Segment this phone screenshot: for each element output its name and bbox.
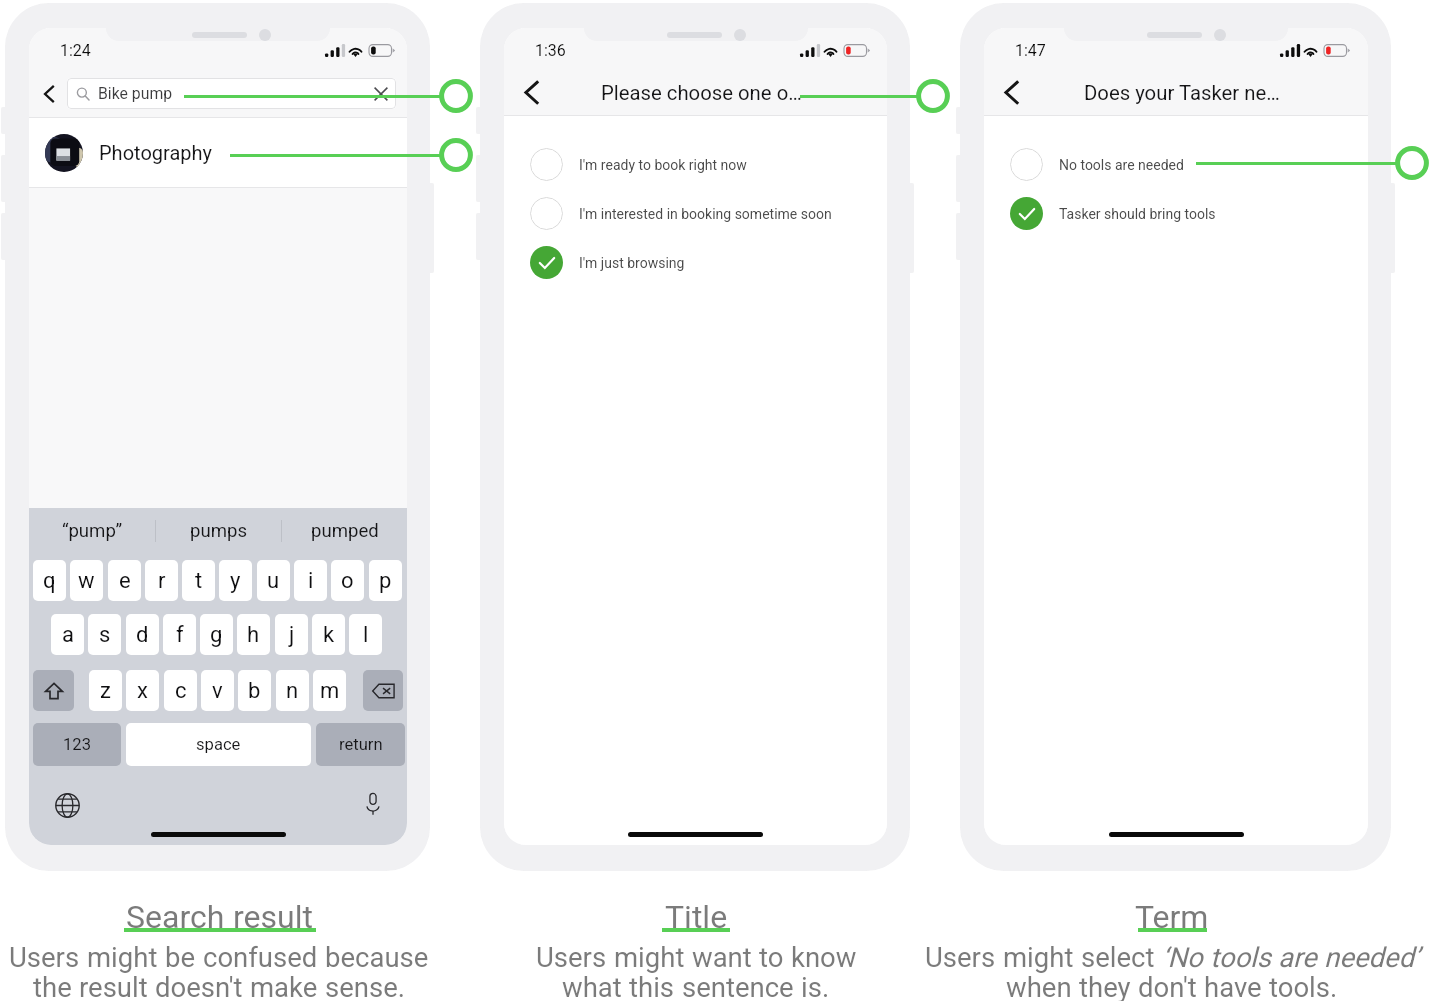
staticText: ‘No xyxy=(1162,941,1203,973)
staticText xyxy=(1262,971,1269,1001)
button[interactable]: i xyxy=(294,560,327,601)
staticText: d xyxy=(136,622,149,648)
button[interactable]: Annotation marker xyxy=(1395,146,1429,180)
button[interactable]: No tools are needed xyxy=(984,140,1368,189)
button[interactable]: Annotation marker xyxy=(439,79,473,113)
staticText: No tools are needed xyxy=(1059,157,1184,173)
staticText: result xyxy=(79,971,148,1001)
staticText: y xyxy=(230,568,241,594)
staticText: a xyxy=(62,622,74,648)
button[interactable]: pumped xyxy=(282,508,407,554)
button[interactable]: Dictate xyxy=(362,793,384,815)
staticText xyxy=(1203,941,1210,973)
staticText xyxy=(675,971,682,1001)
button[interactable]: a xyxy=(51,614,84,655)
button[interactable]: c xyxy=(164,670,197,711)
button[interactable]: I'm just browsing xyxy=(504,238,887,287)
button[interactable]: Backspace xyxy=(363,670,403,711)
button[interactable]: s xyxy=(88,614,121,655)
button[interactable]: t xyxy=(182,560,215,601)
staticText: m xyxy=(320,678,340,704)
button[interactable]: n xyxy=(276,670,309,711)
staticText: 1:24 xyxy=(60,41,91,60)
staticText: sentence xyxy=(682,971,794,1001)
button[interactable]: k xyxy=(312,614,345,655)
staticText: 1:47 xyxy=(1015,41,1046,60)
staticText: Please choose one o… xyxy=(601,81,802,105)
button[interactable]: 123 xyxy=(33,723,121,766)
staticText: pumped xyxy=(311,520,379,542)
staticText: x xyxy=(137,678,148,704)
staticText: what xyxy=(562,971,622,1001)
staticText: i xyxy=(308,568,314,594)
button[interactable]: z xyxy=(89,670,122,711)
button[interactable]: Tasker should bring tools xyxy=(984,189,1368,238)
button[interactable]: o xyxy=(331,560,364,601)
staticText: sense. xyxy=(325,971,405,1001)
button[interactable]: Back xyxy=(38,83,60,105)
button[interactable]: Annotation marker xyxy=(439,138,473,172)
button[interactable]: y xyxy=(219,560,252,601)
button[interactable]: Bike pump xyxy=(67,78,396,109)
button[interactable]: pumps xyxy=(156,508,281,554)
staticText: might xyxy=(1003,941,1074,973)
button[interactable]: b xyxy=(238,670,271,711)
button[interactable]: Back xyxy=(996,77,1027,108)
button[interactable]: space xyxy=(126,723,311,766)
staticText xyxy=(1197,971,1204,1001)
button[interactable]: Shift xyxy=(33,670,74,711)
button[interactable]: j xyxy=(275,614,308,655)
staticText: o xyxy=(341,568,354,594)
staticText: Does your Tasker ne… xyxy=(1084,81,1280,105)
button[interactable]: u xyxy=(257,560,290,601)
button[interactable]: w xyxy=(70,560,103,601)
button[interactable]: r xyxy=(145,560,178,601)
staticText: this xyxy=(629,971,675,1001)
button[interactable]: e xyxy=(108,560,141,601)
button[interactable]: q xyxy=(33,560,66,601)
staticText: Title xyxy=(665,898,728,936)
staticText: tools xyxy=(1210,941,1271,973)
staticText: have xyxy=(1204,971,1262,1001)
button[interactable]: “pump” xyxy=(29,508,155,554)
staticText: z xyxy=(100,678,111,704)
button[interactable]: h xyxy=(237,614,270,655)
button[interactable]: v xyxy=(201,670,234,711)
staticText xyxy=(148,971,155,1001)
staticText: j xyxy=(289,622,295,648)
button[interactable]: I'm interested in booking sometime soon xyxy=(504,189,887,238)
staticText: I'm just browsing xyxy=(579,255,685,271)
button[interactable]: Change keyboard xyxy=(55,793,80,818)
staticText: Bike pump xyxy=(98,84,173,103)
button[interactable]: Clear search xyxy=(371,84,391,104)
staticText: confused xyxy=(203,941,318,973)
button[interactable]: g xyxy=(200,614,233,655)
staticText: s xyxy=(99,622,111,648)
button[interactable]: return xyxy=(316,723,405,766)
staticText: Tasker should bring tools xyxy=(1059,206,1216,222)
button[interactable]: I'm ready to book right now xyxy=(504,140,887,189)
staticText: doesn't xyxy=(155,971,243,1001)
button[interactable]: Photography xyxy=(29,118,407,187)
button[interactable]: Back xyxy=(516,77,547,108)
staticText xyxy=(243,971,250,1001)
button[interactable]: p xyxy=(369,560,402,601)
button[interactable]: x xyxy=(126,670,159,711)
button[interactable]: f xyxy=(163,614,196,655)
staticText xyxy=(225,898,233,936)
staticText xyxy=(1131,971,1138,1001)
button[interactable]: Annotation marker xyxy=(916,79,950,113)
staticText: are xyxy=(1278,941,1317,973)
button[interactable]: d xyxy=(126,614,159,655)
staticText: want xyxy=(692,941,752,973)
button[interactable]: l xyxy=(349,614,382,655)
button[interactable]: m xyxy=(313,670,346,711)
